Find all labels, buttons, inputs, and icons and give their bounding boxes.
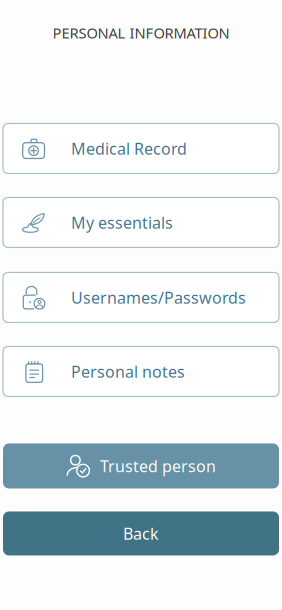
button[interactable]: Personal notes [3, 346, 279, 396]
button[interactable]: Usernames/Passwords [3, 272, 279, 322]
button[interactable]: Medical Record [3, 123, 279, 173]
staticText: Usernames/Passwords [71, 287, 246, 308]
staticText: Personal notes [71, 361, 185, 382]
staticText: PERSONAL INFORMATION [52, 23, 229, 42]
button[interactable]: Trusted person [3, 443, 279, 488]
staticText: Trusted person [100, 455, 216, 477]
staticText: Medical Record [71, 138, 187, 159]
staticText: Back [123, 523, 159, 544]
button[interactable]: My essentials [3, 197, 279, 247]
staticText: My essentials [71, 212, 173, 233]
button[interactable]: Back [3, 511, 279, 555]
